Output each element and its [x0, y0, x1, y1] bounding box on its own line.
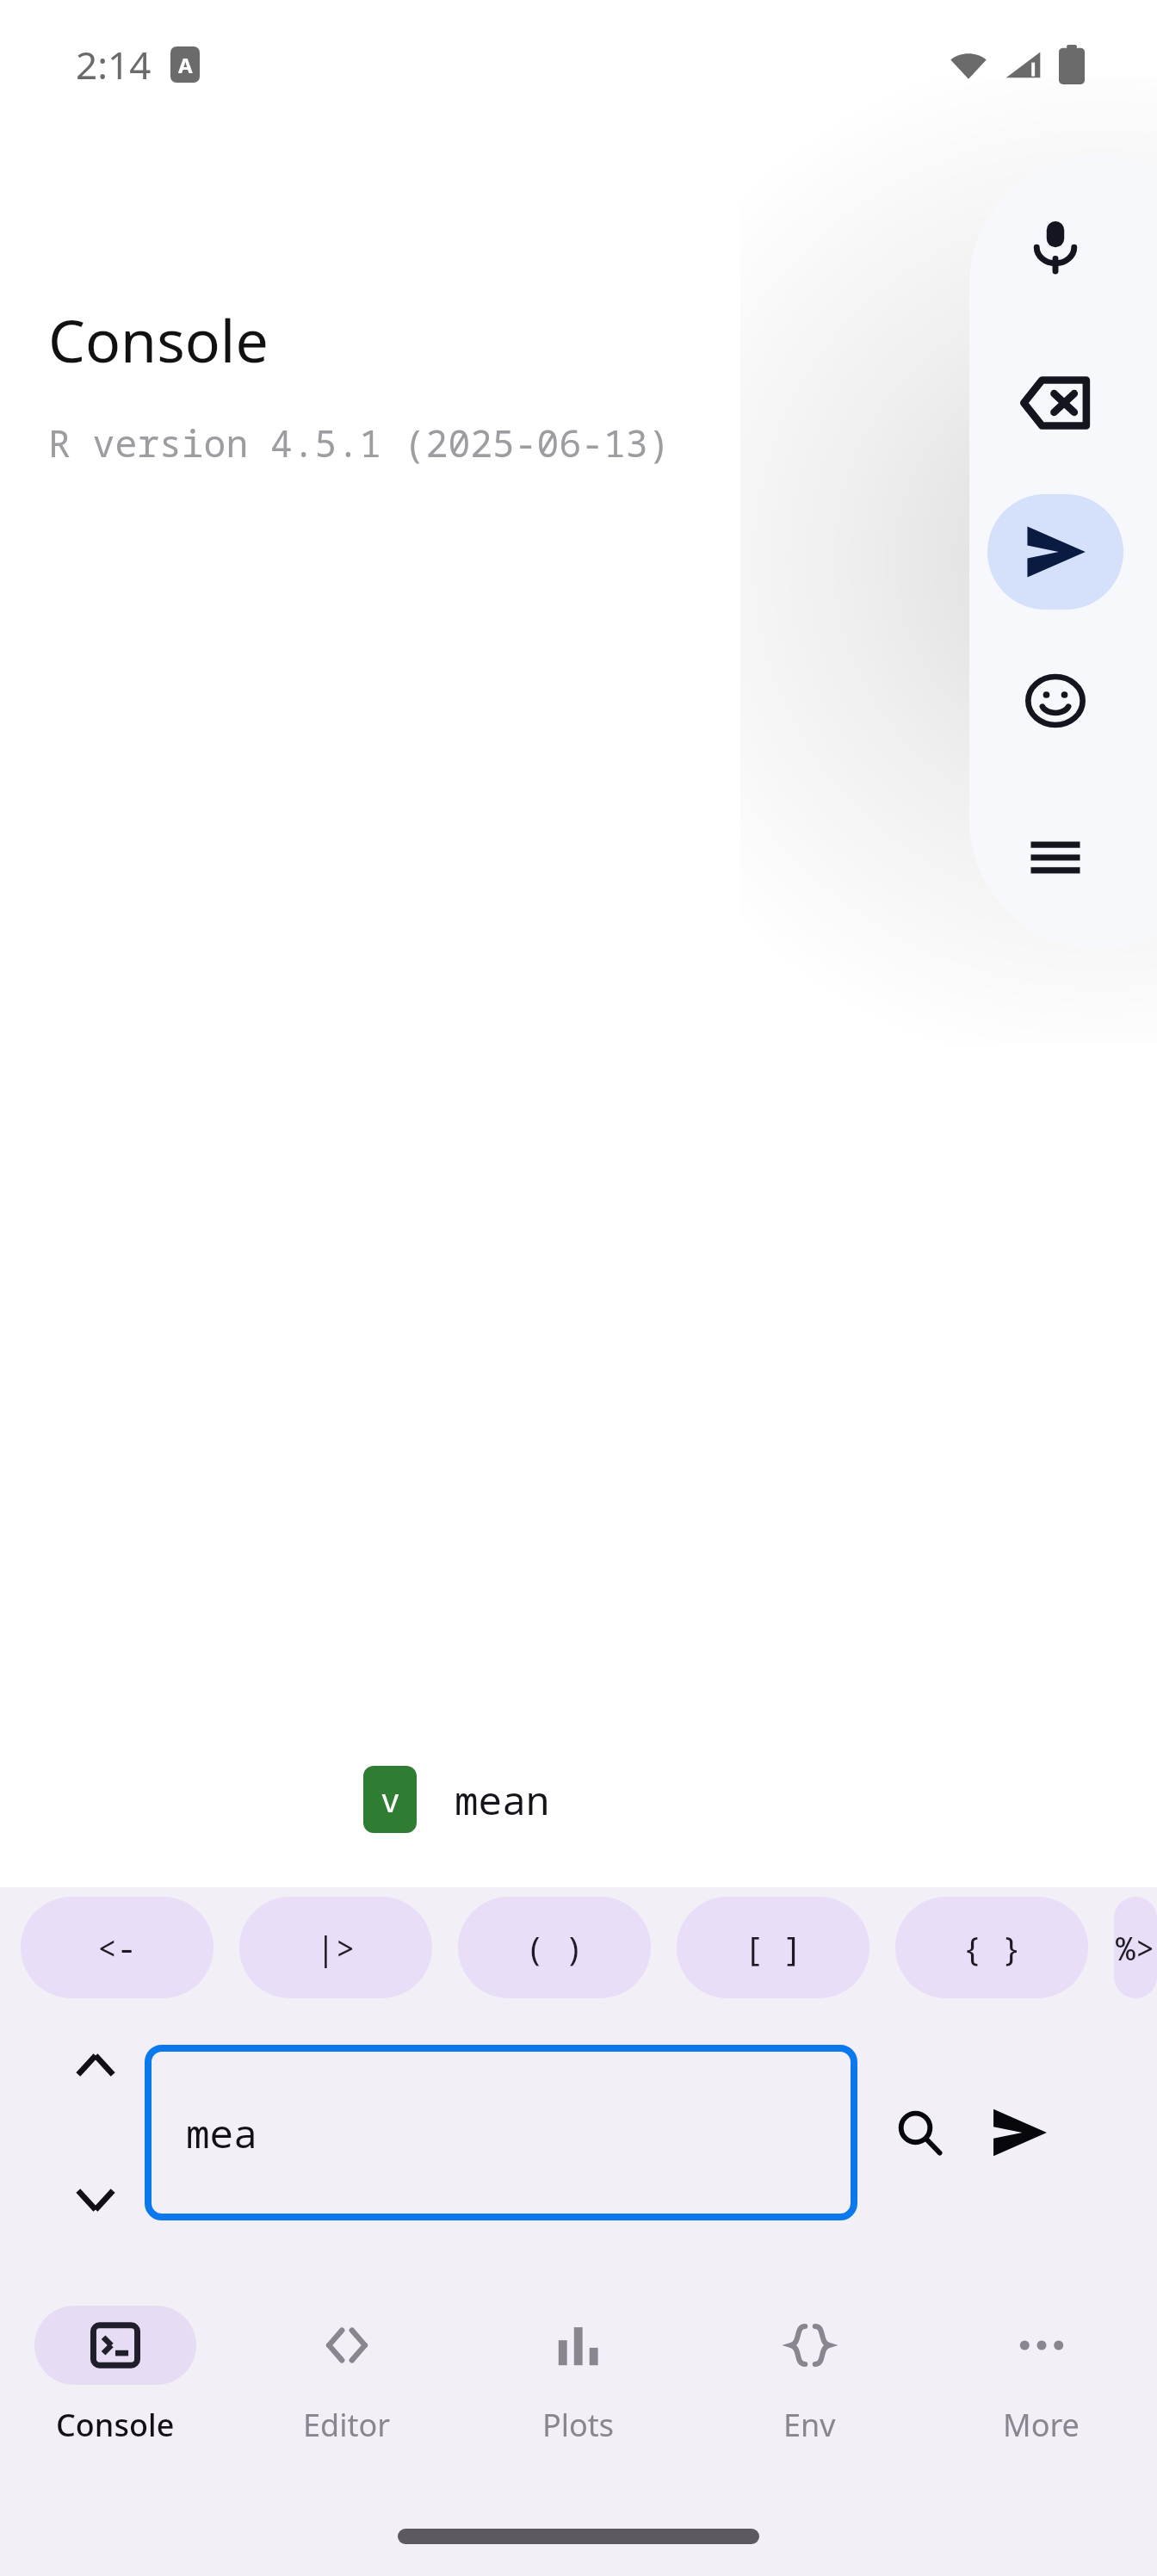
button[interactable]: mea [148, 2048, 854, 2217]
staticText: mea [186, 2106, 257, 2160]
staticText: %> [1116, 1925, 1155, 1970]
staticText: |> [316, 1925, 356, 1970]
button[interactable]: Console [0, 2292, 231, 2497]
staticText: Plots [542, 2404, 615, 2446]
staticText: [ ] [744, 1925, 803, 1970]
staticText: 2:14 [76, 39, 152, 90]
button[interactable]: Plots [462, 2292, 694, 2497]
staticText: v [381, 1777, 400, 1822]
button[interactable]: Run command [974, 2088, 1064, 2177]
button[interactable]: v [315, 1712, 1157, 1887]
button[interactable]: Send [987, 494, 1123, 610]
staticText: Console [48, 300, 269, 380]
button[interactable]: %> [1114, 1897, 1157, 1998]
staticText: mean [455, 1773, 550, 1827]
button[interactable]: ( ) [458, 1897, 651, 1998]
button[interactable]: More [925, 2292, 1157, 2497]
staticText: More [1003, 2404, 1080, 2446]
button[interactable]: Search history [876, 2090, 962, 2176]
button[interactable]: Voice input [991, 182, 1120, 311]
button[interactable]: Backspace [991, 338, 1120, 468]
staticText: Editor [303, 2404, 391, 2446]
button[interactable]: Next command [64, 2168, 127, 2232]
button[interactable]: Previous command [64, 2034, 127, 2097]
button[interactable]: Env [694, 2292, 925, 2497]
staticText: Console [56, 2404, 175, 2446]
button[interactable]: { } [895, 1897, 1088, 1998]
button[interactable]: Emoji [991, 636, 1120, 765]
button[interactable]: |> [239, 1897, 432, 1998]
staticText: ( ) [525, 1925, 585, 1970]
button[interactable]: Keyboard options [991, 793, 1120, 922]
button[interactable]: Editor [231, 2292, 462, 2497]
button[interactable]: [ ] [677, 1897, 869, 1998]
button[interactable]: <- [21, 1897, 213, 1998]
staticText: { } [962, 1925, 1022, 1970]
staticText: <- [97, 1925, 137, 1970]
staticText: R version 4.5.1 (2025-06-13) [48, 418, 671, 468]
staticText: A [178, 51, 193, 79]
staticText: Env [783, 2404, 836, 2446]
